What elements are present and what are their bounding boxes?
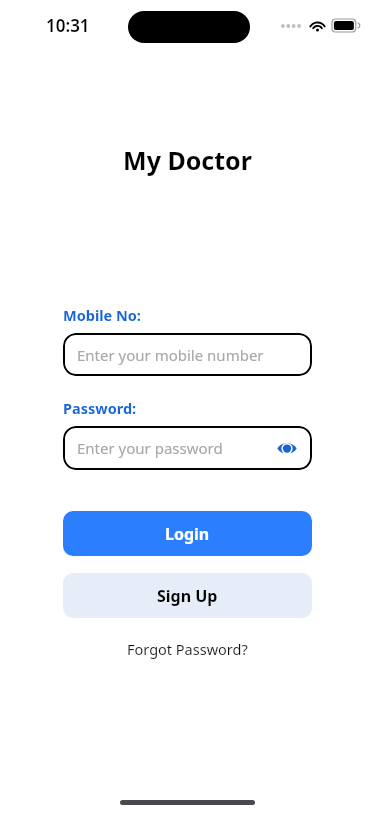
button[interactable]: Enter your mobile number [63, 333, 312, 376]
button[interactable]: Forgot Password? [123, 637, 252, 661]
staticText: Forgot Password? [127, 639, 248, 659]
staticText: 10:31 [46, 14, 90, 37]
staticText: Mobile No: [63, 305, 141, 325]
staticText: Login [165, 523, 210, 545]
button[interactable]: Show password [274, 435, 300, 461]
staticText: My Doctor [0, 143, 375, 177]
staticText: Sign Up [157, 585, 218, 607]
button[interactable]: Sign Up [63, 573, 312, 618]
staticText: Enter your password [77, 438, 223, 458]
staticText: Password: [63, 398, 137, 418]
staticText: Enter your mobile number [77, 345, 264, 365]
button[interactable]: Login [63, 511, 312, 556]
button[interactable]: Enter your password [63, 426, 312, 470]
